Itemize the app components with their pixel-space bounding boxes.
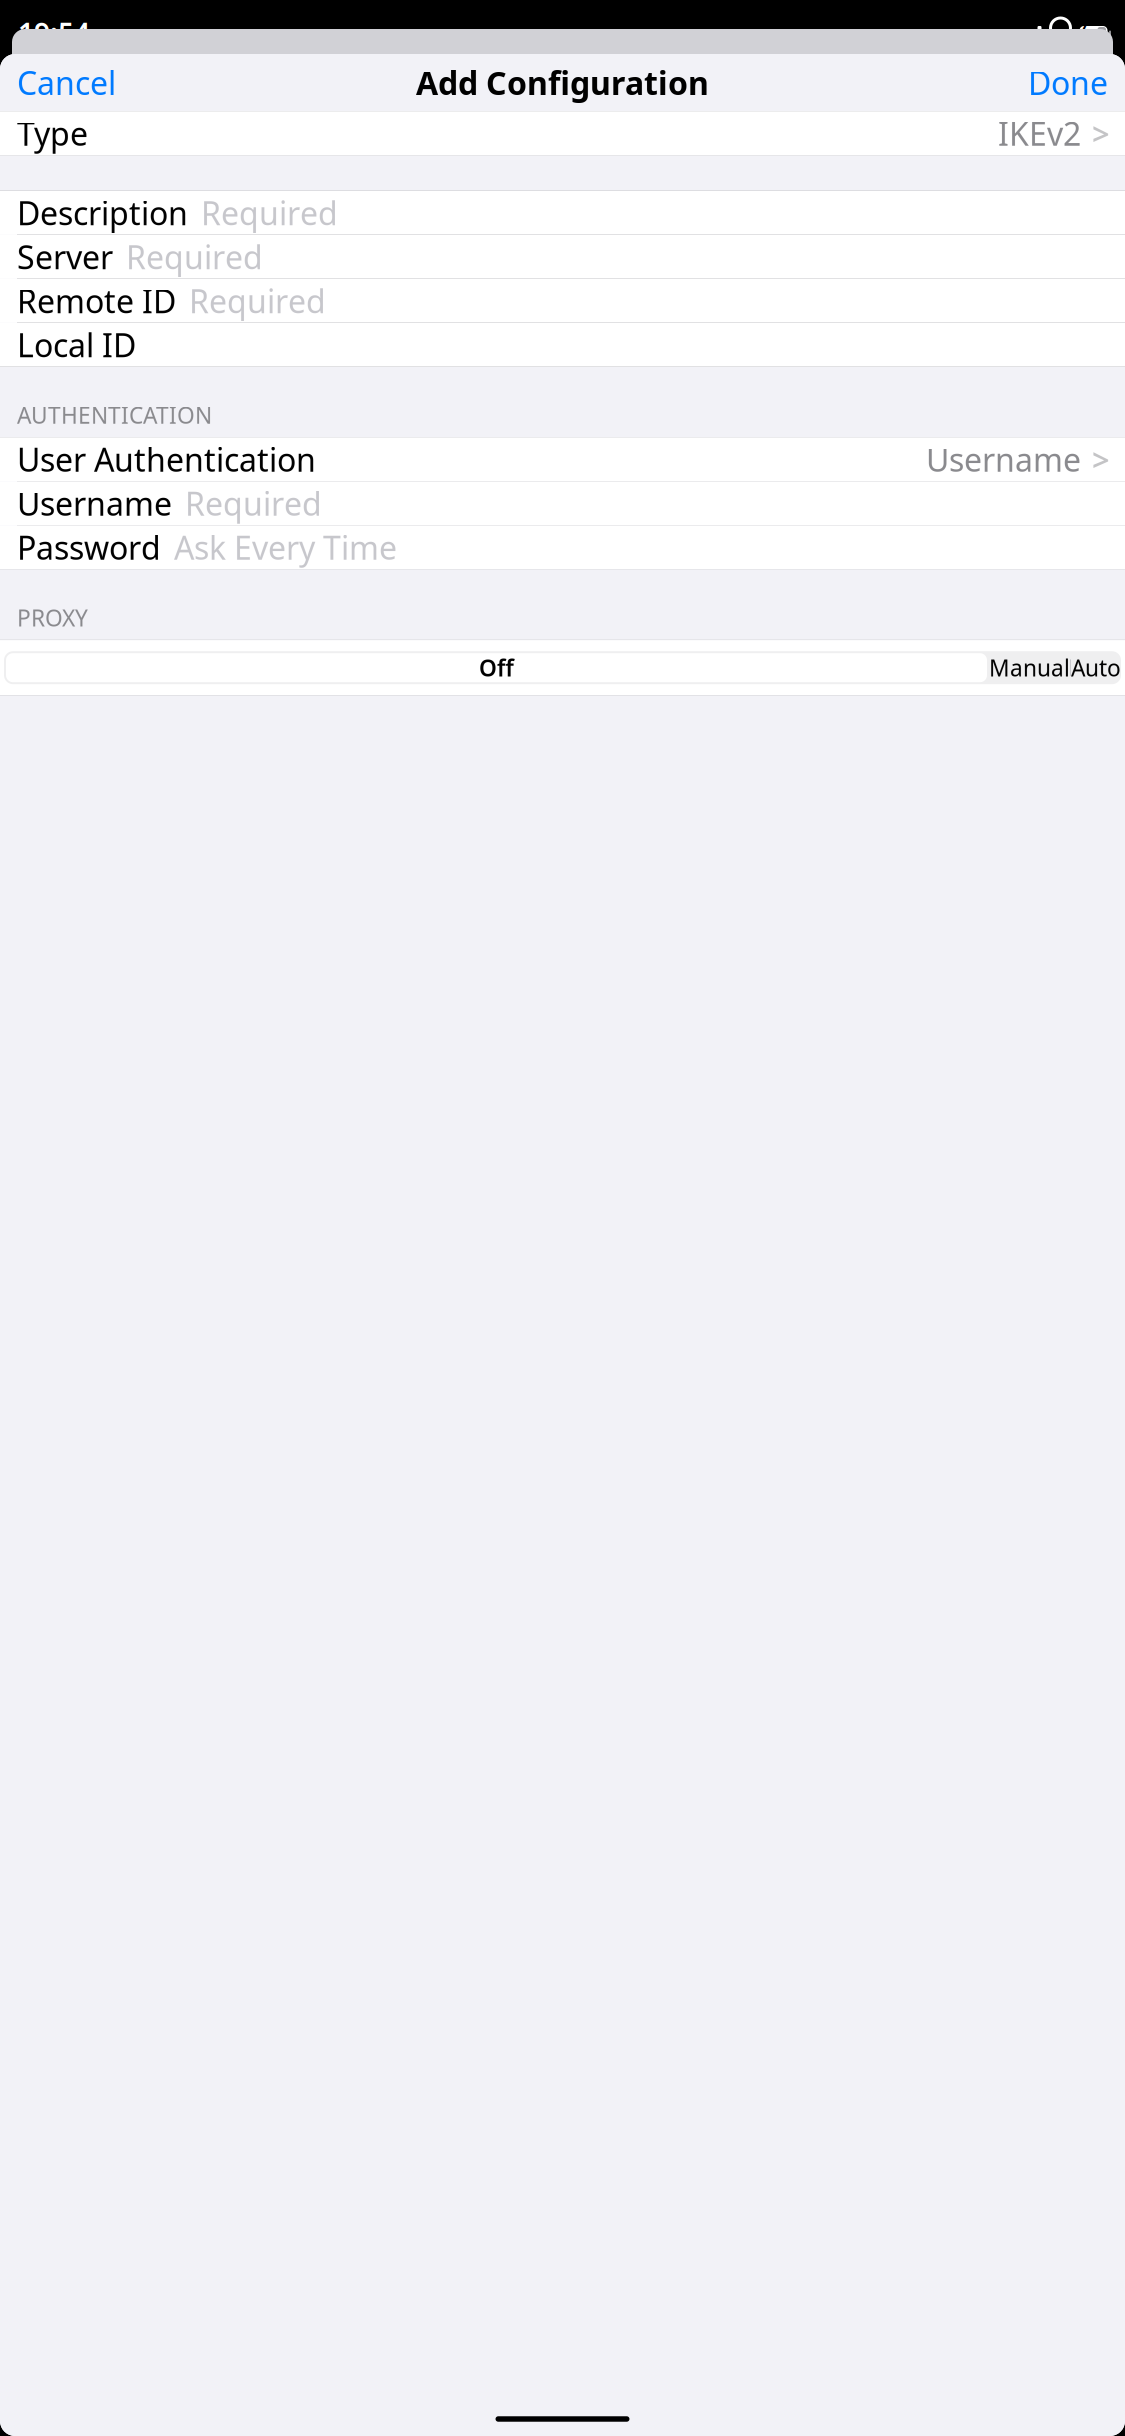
button[interactable]: Manual	[989, 651, 1070, 684]
button[interactable]: Type	[0, 111, 1125, 155]
staticText: Off	[479, 653, 514, 683]
staticText: Add Configuration	[416, 61, 709, 104]
staticText: Type	[17, 112, 88, 154]
staticText: >	[1092, 113, 1110, 154]
button[interactable]: Description	[0, 191, 1125, 234]
staticText: Remote ID	[17, 279, 176, 322]
staticText: Required	[126, 235, 263, 278]
button[interactable]: Local ID	[0, 323, 1125, 366]
staticText: Ask Every Time	[174, 526, 397, 569]
button[interactable]: Done	[1014, 51, 1125, 114]
staticText: User Authentication	[17, 438, 316, 481]
button[interactable]: Remote ID	[0, 279, 1125, 322]
staticText: Password	[17, 526, 161, 569]
staticText: Required	[201, 191, 338, 234]
staticText: Manual	[989, 653, 1070, 683]
staticText: PROXY	[17, 603, 88, 633]
button[interactable]: Server	[0, 235, 1125, 278]
staticText: Username	[17, 482, 172, 525]
staticText: 77	[1081, 13, 1089, 52]
staticText: Username	[926, 438, 1081, 481]
staticText: >	[1092, 439, 1110, 480]
button[interactable]: Off	[4, 651, 989, 684]
staticText: Required	[189, 279, 326, 322]
staticText: Done	[1028, 61, 1108, 104]
staticText: Required	[185, 482, 322, 525]
button[interactable]: User Authentication	[0, 438, 1125, 481]
staticText: 19:54	[18, 14, 90, 52]
staticText: Cancel	[17, 61, 116, 104]
staticText: IKEv2	[998, 112, 1081, 154]
button[interactable]: Password	[0, 526, 1125, 569]
button[interactable]: Auto	[1071, 651, 1121, 684]
staticText: Server	[17, 235, 113, 278]
staticText: Description	[17, 191, 188, 234]
staticText: Local ID	[17, 323, 136, 366]
staticText: Auto	[1071, 653, 1121, 683]
staticText: AUTHENTICATION	[17, 400, 212, 430]
button[interactable]: Cancel	[0, 51, 130, 114]
button[interactable]: Username	[0, 482, 1125, 525]
